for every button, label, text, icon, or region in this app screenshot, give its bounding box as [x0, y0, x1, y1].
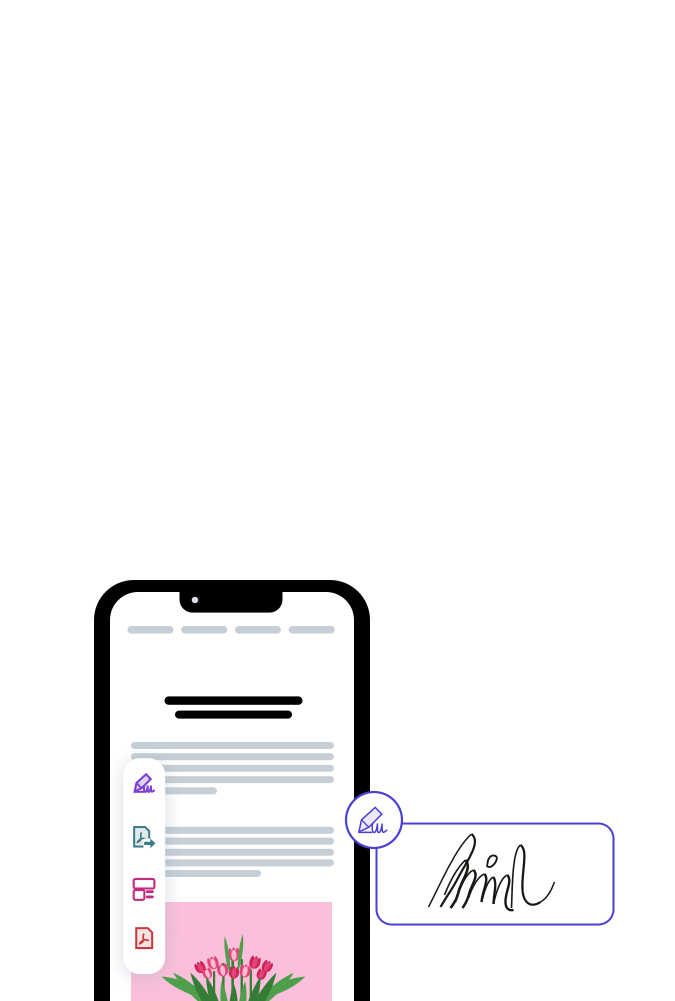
- button[interactable]: Edit form layout: [123, 867, 165, 911]
- button[interactable]: Export as PDF: [123, 815, 165, 859]
- button[interactable]: Open PDF: [123, 916, 165, 960]
- button[interactable]: Sign document: [123, 762, 165, 806]
